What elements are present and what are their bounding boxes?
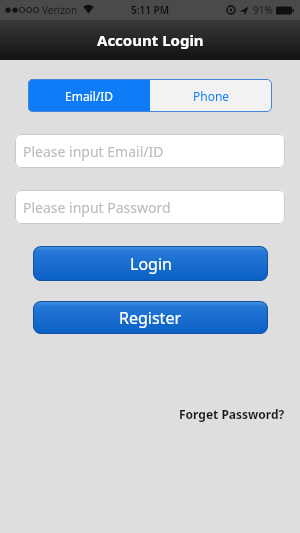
- staticText: 91%: [253, 3, 273, 17]
- staticText: Phone: [193, 88, 230, 104]
- button[interactable]: Register: [33, 301, 268, 334]
- staticText: 5:11 PM: [131, 3, 169, 17]
- button[interactable]: Email/ID: [28, 79, 150, 112]
- staticText: Email/ID: [65, 88, 114, 104]
- staticText: Login: [130, 253, 172, 275]
- button[interactable]: Login: [33, 246, 268, 281]
- button[interactable]: Please input Password: [15, 190, 285, 224]
- button[interactable]: Forget Password?: [179, 406, 285, 422]
- staticText: Account Login: [97, 30, 204, 50]
- staticText: Register: [119, 307, 182, 329]
- button[interactable]: Please input Email/ID: [15, 134, 285, 168]
- staticText: Please input Email/ID: [23, 142, 164, 161]
- staticText: Verizon: [42, 3, 78, 17]
- button[interactable]: Phone: [150, 79, 272, 112]
- staticText: Please input Password: [23, 198, 171, 217]
- staticText: Forget Password?: [179, 406, 285, 422]
